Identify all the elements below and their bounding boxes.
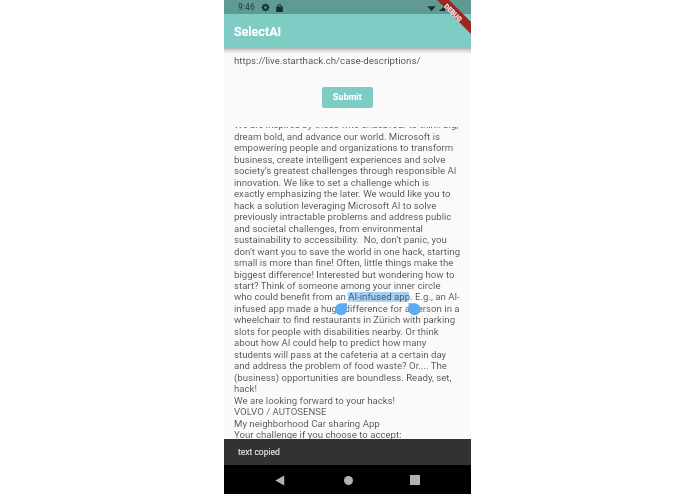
staticText: society’s greatest challenges through re… [234, 165, 471, 176]
staticText: small is more than fine! Often, little t… [234, 257, 471, 268]
staticText: hack a solution leveraging Microsoft AI … [234, 200, 471, 211]
staticText: previously intractable problems and addr… [234, 211, 471, 222]
staticText: VOLVO / AUTOSENSE [234, 406, 471, 417]
staticText: SelectAI [234, 24, 282, 39]
staticText: innovation. We like to set a challenge w… [234, 177, 471, 188]
staticText: text copied [238, 447, 280, 457]
button[interactable]: Home [336, 468, 360, 492]
staticText: about how AI could help to predict how m… [234, 337, 471, 348]
staticText: empowering people and organizations to t… [234, 142, 471, 153]
staticText: dream bold, and advance our world. Micro… [234, 131, 471, 142]
staticText: slots for people with disabilities nearb… [234, 326, 471, 337]
staticText: exactly emphasizing the later. We would … [234, 188, 471, 199]
button[interactable]: Recent apps [403, 468, 427, 492]
staticText: Your challenge if you choose to accept: [234, 429, 471, 439]
staticText: and societal challenges, from environmen… [234, 223, 471, 234]
staticText: infused app made a huge difference for a… [234, 303, 471, 314]
staticText: DEBUG [442, 2, 464, 24]
staticText: 9:46 [238, 2, 255, 12]
staticText: Submit [333, 92, 362, 103]
staticText: wheelchair to find restaurants in Zürich… [234, 314, 471, 325]
staticText: hack! [234, 383, 471, 394]
staticText: students will pass at the cafeteria at a… [234, 349, 471, 360]
staticText: start? Think of someone among your inner… [234, 280, 471, 291]
button[interactable]: Back [268, 468, 292, 492]
staticText: and address the problem of food waste? O… [234, 360, 471, 371]
staticText: don’t want you to save the world in one … [234, 246, 471, 257]
staticText: business, create intelligent experiences… [234, 154, 471, 165]
staticText: We are inspired by those who endeavour t… [234, 127, 471, 130]
staticText: https://live.starthack.ch/case-descripti… [234, 55, 421, 66]
staticText: sustainability to accessibility. No, don… [234, 234, 471, 245]
staticText: (business) opportunities are boundless. … [234, 372, 471, 383]
staticText: biggest difference! Interested but wonde… [234, 268, 471, 279]
staticText: My neighborhood Car sharing App [234, 418, 471, 429]
staticText: who could benefit from an AI-infused app… [234, 291, 471, 302]
staticText: We are looking forward to your hacks! [234, 395, 471, 406]
button[interactable]: Submit [322, 87, 373, 108]
